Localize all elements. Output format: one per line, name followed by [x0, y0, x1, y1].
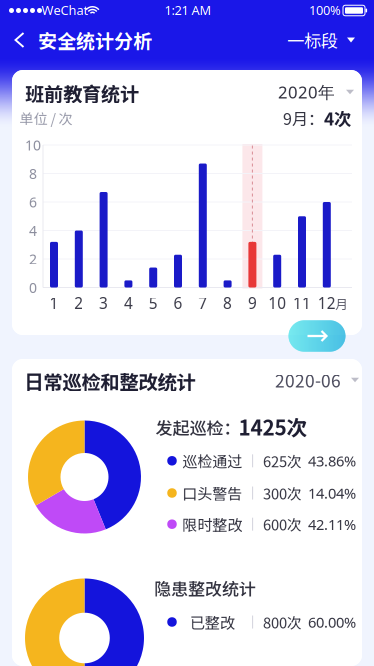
- staticText: 安全统计分析: [38, 26, 152, 54]
- staticText: 600次: [263, 514, 302, 535]
- staticText: 已整改: [190, 611, 235, 633]
- staticText: 4次: [324, 105, 351, 131]
- staticText: 14.04%: [308, 483, 356, 503]
- staticText: 6: [29, 192, 37, 212]
- staticText: 月: [335, 294, 348, 313]
- staticText: 100%: [309, 1, 341, 19]
- staticText: 4: [124, 293, 133, 313]
- staticText: 单位 / 次: [19, 108, 72, 128]
- staticText: 一标段: [287, 27, 338, 53]
- staticText: 43.86%: [308, 451, 356, 471]
- staticText: 2020年: [278, 81, 335, 103]
- staticText: 2: [74, 293, 83, 313]
- staticText: 8: [223, 293, 232, 313]
- staticText: 10: [268, 293, 286, 313]
- staticText: 发起巡检：: [155, 415, 240, 439]
- staticText: 5: [149, 293, 158, 313]
- staticText: 隐患整改统计: [154, 576, 256, 600]
- staticText: 班前教育统计: [25, 79, 139, 107]
- staticText: 1: [49, 293, 58, 313]
- staticText: 12: [318, 293, 336, 313]
- staticText: 7: [198, 293, 207, 313]
- staticText: 1:21 AM: [164, 1, 211, 19]
- staticText: 日常巡检和整改统计: [24, 367, 195, 395]
- staticText: 0: [29, 278, 37, 297]
- staticText: 限时整改: [182, 513, 242, 535]
- staticText: 2: [29, 249, 37, 269]
- staticText: 口头警告: [182, 482, 242, 504]
- button[interactable]: Back: [4, 21, 34, 59]
- staticText: 42.11%: [308, 514, 356, 534]
- staticText: 8: [29, 164, 37, 183]
- staticText: 11: [293, 293, 311, 313]
- staticText: 1425次: [238, 411, 307, 441]
- staticText: 800次: [263, 611, 302, 633]
- button[interactable]: 2020年: [272, 75, 360, 109]
- staticText: 10: [25, 135, 41, 155]
- staticText: WeChat: [41, 1, 88, 19]
- staticText: 6: [173, 293, 182, 313]
- button[interactable]: 2020-06: [269, 361, 365, 399]
- staticText: 9月：: [283, 106, 324, 130]
- staticText: 3: [99, 293, 108, 313]
- staticText: 4: [29, 221, 37, 240]
- staticText: 2020-06: [275, 367, 341, 393]
- staticText: 625次: [263, 450, 302, 471]
- button[interactable]: 一标段: [278, 17, 364, 63]
- staticText: 巡检通过: [182, 450, 242, 472]
- staticText: 60.00%: [308, 612, 356, 632]
- staticText: 300次: [263, 482, 302, 504]
- staticText: 9: [248, 293, 257, 313]
